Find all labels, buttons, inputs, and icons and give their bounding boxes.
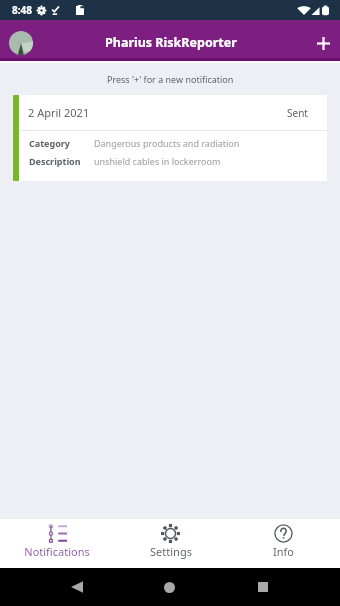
- staticText: Settings: [150, 544, 192, 559]
- button[interactable]: Settings: [114, 519, 227, 568]
- staticText: Notifications: [24, 544, 90, 559]
- staticText: Category: [29, 137, 94, 149]
- button[interactable]: Home: [154, 568, 184, 606]
- staticText: 2 April 2021: [28, 105, 90, 120]
- button[interactable]: Open menu: [9, 31, 33, 55]
- staticText: Description: [29, 155, 94, 167]
- staticText: Pharius RiskReporter: [105, 34, 237, 51]
- button[interactable]: Add notification: [310, 30, 336, 56]
- staticText: 8:48: [12, 3, 32, 17]
- button[interactable]: Notifications: [0, 519, 114, 568]
- staticText: Sent: [287, 106, 308, 120]
- button[interactable]: Back: [62, 568, 92, 606]
- staticText: Info: [273, 544, 294, 559]
- button[interactable]: Info: [227, 519, 340, 568]
- button[interactable]: Recent apps: [248, 568, 278, 606]
- staticText: Dangerous products and radiation: [94, 137, 240, 149]
- staticText: Press '+' for a new notification: [107, 73, 234, 85]
- staticText: unshield cables in lockerroom: [94, 155, 221, 167]
- button[interactable]: 2 April 2021: [13, 95, 327, 181]
